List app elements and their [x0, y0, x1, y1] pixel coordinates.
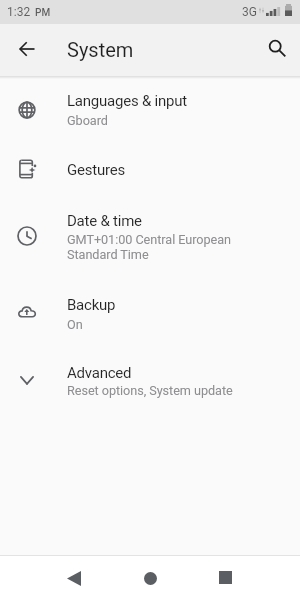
staticText: Backup: [67, 296, 116, 314]
staticText: 3G: [242, 5, 257, 19]
button[interactable]: Search: [255, 26, 299, 70]
staticText: Gestures: [67, 161, 125, 179]
staticText: System: [67, 38, 134, 61]
button[interactable]: Backup: [0, 277, 300, 343]
staticText: On: [67, 317, 248, 332]
staticText: 1:32: [7, 5, 31, 19]
staticText: Languages & input: [67, 92, 187, 110]
staticText: PM: [35, 7, 51, 19]
button[interactable]: Date & time: [0, 193, 300, 277]
staticText: Gboard: [67, 113, 248, 128]
button[interactable]: Home: [126, 557, 174, 599]
staticText: Date & time: [67, 212, 142, 230]
button[interactable]: Languages & input: [0, 77, 300, 143]
button[interactable]: Back: [50, 557, 98, 599]
staticText: GMT+01:00 Central European Standard Time: [67, 232, 248, 262]
button[interactable]: Recent apps: [201, 556, 249, 598]
staticText: Advanced: [67, 364, 132, 382]
button[interactable]: Advanced: [0, 343, 300, 409]
staticText: Reset options, System update: [67, 383, 248, 398]
button[interactable]: Back: [4, 26, 49, 71]
button[interactable]: Gestures: [0, 143, 300, 193]
